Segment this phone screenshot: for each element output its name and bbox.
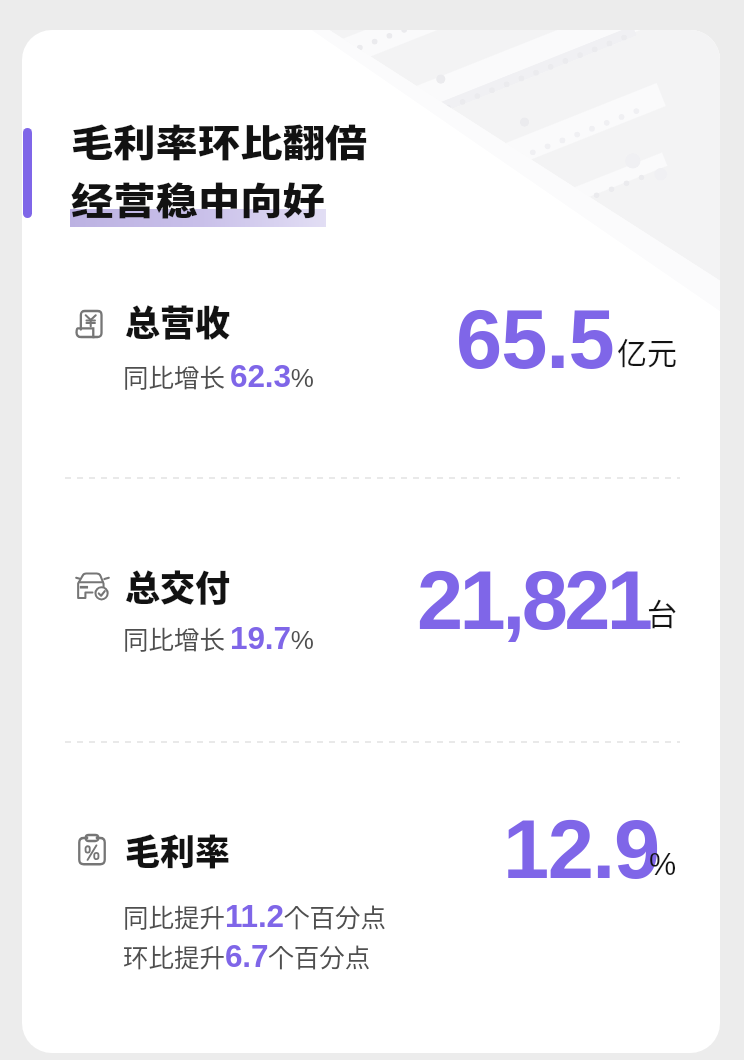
staticText: 经营稳中向好 — [71, 172, 325, 225]
button[interactable]: 毛利率 — [125, 824, 231, 875]
staticText: 亿元 — [617, 329, 677, 372]
button[interactable]: Total deliveries — [76, 572, 109, 601]
staticText: 21,821 — [417, 554, 650, 647]
staticText: 毛利率 — [125, 824, 231, 875]
staticText: 环比提升6.7个百分点 — [123, 937, 371, 974]
button[interactable]: Gross margin — [78, 835, 106, 865]
staticText: 同比增长 19.7% — [123, 619, 314, 656]
staticText: 毛利率环比翻倍 — [71, 114, 367, 167]
staticText: 12.9 — [503, 803, 659, 896]
staticText: 同比提升11.2个百分点 — [123, 897, 386, 934]
button[interactable]: 总交付 — [125, 560, 231, 611]
staticText: 总交付 — [125, 560, 231, 611]
staticText: 65.5 — [456, 293, 614, 386]
staticText: 总营收 — [125, 295, 231, 346]
button[interactable]: Total revenue — [76, 310, 103, 338]
staticText: % — [649, 847, 677, 881]
staticText: 同比增长 62.3% — [123, 357, 314, 394]
staticText: 台 — [647, 590, 677, 633]
button[interactable]: 总营收 — [125, 295, 231, 346]
